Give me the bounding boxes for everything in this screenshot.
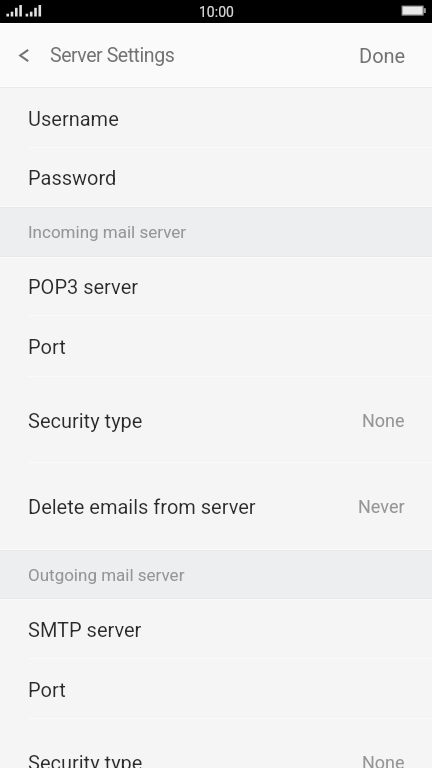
- staticText: POP3 server: [28, 275, 139, 298]
- staticText: Security type: [28, 409, 143, 432]
- staticText: Delete emails from server: [28, 495, 256, 518]
- button[interactable]: Username: [0, 88, 432, 148]
- staticText: Incoming mail server: [28, 222, 187, 242]
- staticText: Never: [358, 496, 405, 517]
- button[interactable]: Security type: [0, 719, 432, 768]
- button[interactable]: Security type: [0, 377, 432, 463]
- staticText: SMTP server: [28, 618, 142, 641]
- staticText: Outgoing mail server: [28, 565, 185, 585]
- button[interactable]: Port: [0, 316, 432, 377]
- button[interactable]: Password: [0, 148, 432, 207]
- staticText: None: [362, 752, 405, 768]
- staticText: Port: [28, 335, 66, 358]
- staticText: Server Settings: [50, 44, 175, 67]
- button[interactable]: SMTP server: [0, 599, 432, 659]
- button[interactable]: Delete emails from server: [0, 463, 432, 550]
- staticText: Username: [28, 107, 119, 130]
- staticText: Password: [28, 166, 117, 189]
- staticText: Security type: [28, 751, 143, 768]
- staticText: 10:00: [199, 4, 234, 20]
- staticText: Done: [359, 44, 406, 67]
- button[interactable]: Done: [333, 24, 432, 87]
- button[interactable]: Port: [0, 659, 432, 719]
- button[interactable]: Back: [0, 24, 47, 87]
- button[interactable]: POP3 server: [0, 257, 432, 316]
- staticText: Port: [28, 678, 66, 701]
- staticText: None: [362, 410, 405, 431]
